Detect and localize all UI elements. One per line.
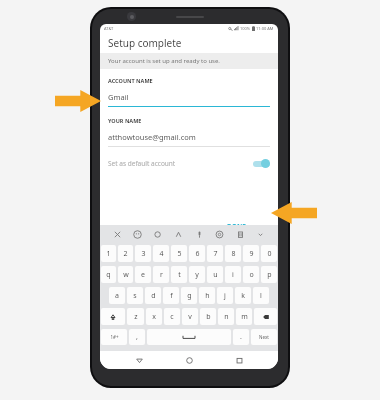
button[interactable]: j [217,287,233,304]
staticText: DONE [227,222,246,231]
button[interactable]: o [243,266,259,283]
button[interactable]: y [189,266,205,283]
button[interactable]: k [235,287,251,304]
button[interactable]: Backspace [254,308,277,325]
staticText: h [205,291,210,301]
button[interactable]: Back [128,351,150,369]
staticText: Next [259,334,269,340]
staticText: 5 [177,249,182,259]
button[interactable]: Emoji [131,228,144,241]
button[interactable]: Settings [213,228,226,241]
staticText: 7 [213,249,218,259]
staticText: m [241,312,248,322]
staticText: 2 [123,249,128,259]
button[interactable]: . [233,329,249,345]
button[interactable]: 6 [189,245,205,262]
button[interactable]: s [127,287,143,304]
staticText: l [260,291,262,301]
button[interactable]: 2 [118,245,133,262]
staticText: t [178,270,181,280]
staticText: 1#+ [110,334,119,340]
staticText: , [136,332,138,342]
button[interactable]: n [218,308,234,325]
staticText: 11:00 AM [256,26,274,31]
button[interactable]: q [101,266,116,283]
staticText: ACCOUNT NAME [108,77,153,84]
button[interactable]: Set as default account [100,156,278,170]
staticText: i [232,270,234,280]
button[interactable]: Sticker [111,228,124,241]
staticText: q [106,270,111,280]
button[interactable]: , [129,329,145,345]
button[interactable]: Gmail [100,92,278,102]
button[interactable]: DONE [218,219,254,233]
staticText: b [206,312,211,322]
button[interactable]: Shift [101,308,125,325]
staticText: w [123,270,129,280]
button[interactable]: z [127,308,144,325]
button[interactable]: atthowtouse@gmail.com [100,132,278,142]
staticText: 9 [249,249,254,259]
button[interactable]: 3 [135,245,151,262]
button[interactable]: Translate [172,228,185,241]
button[interactable]: f [163,287,179,304]
staticText: g [187,291,192,301]
staticText: j [224,291,226,301]
button[interactable]: 4 [153,245,169,262]
button[interactable]: u [207,266,223,283]
button[interactable]: l [253,287,269,304]
staticText: x [152,312,156,322]
button[interactable]: 9 [243,245,259,262]
button[interactable]: 7 [207,245,223,262]
staticText: 3 [141,249,146,259]
staticText: 4 [159,249,164,259]
staticText: 100% [240,26,251,31]
button[interactable]: Next [251,329,277,345]
button[interactable]: v [182,308,198,325]
staticText: atthowtouse@gmail.com [108,132,196,142]
button[interactable]: 0 [261,245,277,262]
button[interactable]: d [145,287,161,304]
button[interactable]: 8 [225,245,241,262]
staticText: Gmail [108,92,129,102]
button[interactable]: e [135,266,151,283]
button[interactable]: r [153,266,169,283]
button[interactable]: GIF [152,228,165,241]
button[interactable]: a [109,287,125,304]
button[interactable]: 1 [101,245,116,262]
button[interactable]: t [171,266,187,283]
button[interactable]: 5 [171,245,187,262]
button[interactable]: h [199,287,215,304]
button[interactable]: w [118,266,133,283]
staticText: 1 [106,249,111,259]
button[interactable]: i [225,266,241,283]
staticText: e [141,270,145,280]
staticText: s [133,291,137,301]
button[interactable]: x [146,308,162,325]
staticText: AT&T [104,26,114,31]
button[interactable]: g [181,287,197,304]
button[interactable]: b [200,308,216,325]
button[interactable]: m [236,308,252,325]
staticText: Your account is set up and ready to use. [108,57,220,65]
button[interactable]: Voice input [193,228,206,241]
staticText: 0 [267,249,272,259]
staticText: Setup complete [108,36,182,50]
staticText: k [241,291,245,301]
staticText: p [267,270,272,280]
staticText: u [213,270,218,280]
staticText: 8 [231,249,236,259]
button[interactable]: Clipboard [234,228,247,241]
button[interactable]: 1#+ [101,329,127,345]
button[interactable]: Recents [228,351,250,369]
staticText: d [151,291,156,301]
button[interactable]: c [164,308,180,325]
button[interactable]: Space [147,329,231,345]
staticText: r [160,270,163,280]
button[interactable]: p [261,266,277,283]
button[interactable]: More [254,228,267,241]
button[interactable]: Home [178,351,200,369]
staticText: a [115,291,119,301]
staticText: f [170,291,173,301]
staticText: n [224,312,229,322]
